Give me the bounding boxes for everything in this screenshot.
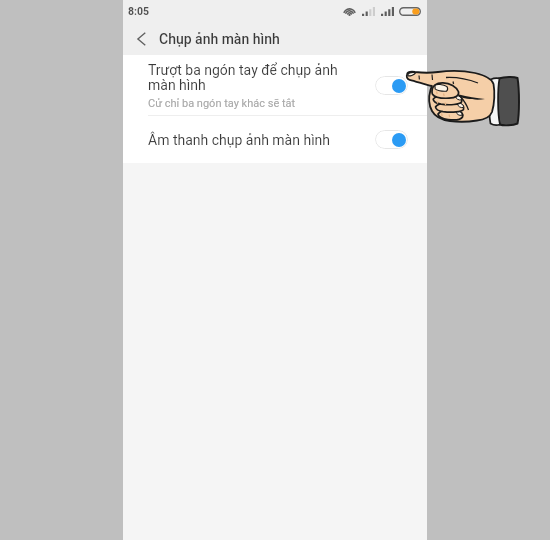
staticText: Âm thanh chụp ảnh màn hình [148, 132, 365, 148]
button[interactable]: Toggle on [375, 130, 408, 149]
staticText: Trượt ba ngón tay để chụp ảnh màn hình [148, 62, 338, 93]
staticText: Chụp ảnh màn hình [159, 31, 280, 47]
staticText: Cử chỉ ba ngón tay khác sẽ tắt [148, 97, 296, 110]
staticText: 8:05 [128, 5, 150, 17]
button[interactable]: Toggle on [375, 76, 408, 95]
button[interactable]: Back [126, 22, 156, 55]
button[interactable]: Trượt ba ngón tay để chụp ảnh màn hình [123, 55, 427, 115]
button[interactable]: Âm thanh chụp ảnh màn hình [123, 116, 427, 163]
